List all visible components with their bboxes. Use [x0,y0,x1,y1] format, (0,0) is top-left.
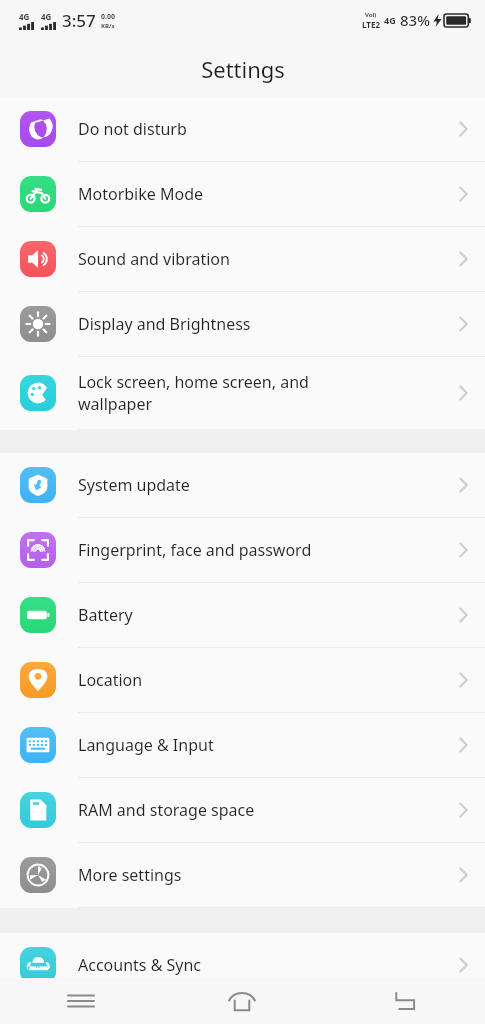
staticText: System update [78,474,441,496]
staticText: Vol) [365,11,377,19]
staticText: RAM and storage space [78,799,441,821]
staticText: Language & Input [78,734,441,756]
staticText: LTE2 [362,19,380,30]
button[interactable]: More settings [0,843,485,907]
button[interactable]: Language & Input [0,713,485,777]
button[interactable]: Battery [0,583,485,647]
staticText: Fingerprint, face and password [78,539,441,561]
staticText: More settings [78,864,441,886]
staticText: 4G [384,14,396,26]
staticText: Display and Brightness [78,313,441,335]
button[interactable]: RAM and storage space [0,778,485,842]
button[interactable]: Sound and vibration [0,227,485,291]
staticText: Motorbike Mode [78,183,441,205]
staticText: KB/s [101,22,115,30]
staticText: 83% [400,10,430,30]
button[interactable]: Location [0,648,485,712]
staticText: Accounts & Sync [78,954,441,976]
button[interactable]: Home [161,978,323,1024]
button[interactable]: Display and Brightness [0,292,485,356]
button[interactable]: Fingerprint, face and password [0,518,485,582]
staticText: Settings [201,54,285,84]
button[interactable]: Lock screen, home screen, and wallpaper [0,357,485,429]
staticText: 4G [19,11,30,22]
staticText: Location [78,669,441,691]
staticText: Battery [78,604,441,626]
button[interactable]: Accounts & Sync [0,933,485,997]
staticText: 4G [41,11,52,22]
staticText: 0.00 [101,12,115,22]
button[interactable]: Back [323,978,485,1024]
button[interactable]: Motorbike Mode [0,162,485,226]
staticText: Do not disturb [78,118,441,140]
button[interactable]: Do not disturb [0,97,485,161]
button[interactable]: Recent apps [0,978,161,1024]
staticText: Sound and vibration [78,248,441,270]
staticText: 3:57 [62,9,96,32]
button[interactable]: System update [0,453,485,517]
staticText: Lock screen, home screen, and wallpaper [78,371,441,415]
